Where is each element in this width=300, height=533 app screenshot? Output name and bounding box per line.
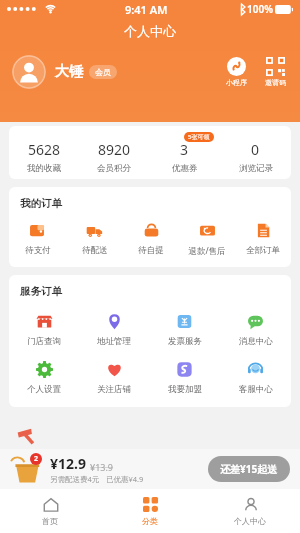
button[interactable]: Cart [10, 452, 44, 486]
staticText: 待配送 [82, 245, 108, 256]
staticText: 待支付 [25, 245, 51, 256]
staticText: 9:41 AM [125, 2, 168, 17]
other: Mini program [227, 57, 246, 76]
button[interactable]: 3 [149, 131, 220, 174]
staticText: 退款/售后 [188, 245, 226, 257]
staticText: 已优惠¥4.9 [106, 474, 144, 484]
other: Invite QR code [266, 57, 285, 76]
staticText: 个人中心 [234, 516, 266, 526]
staticText: 地址管理 [97, 336, 131, 347]
staticText: 0 [251, 140, 260, 159]
button[interactable]: 8920 [79, 131, 149, 174]
staticText: 8920 [98, 140, 131, 159]
staticText: 我的订单 [20, 197, 62, 210]
staticText: 首页 [42, 516, 58, 526]
staticText: 我的收藏 [27, 163, 61, 174]
button[interactable]: 关注店铺 [79, 360, 149, 395]
button[interactable]: 会员 [95, 67, 111, 77]
staticText: 发票服务 [168, 336, 202, 347]
staticText: 关注店铺 [97, 384, 131, 395]
staticText: 门店查询 [27, 336, 61, 347]
button[interactable]: 个人中心 [200, 489, 300, 533]
staticText: 我要加盟 [168, 384, 202, 395]
button[interactable]: 5628 [9, 131, 79, 174]
staticText: 分类 [142, 516, 158, 526]
button[interactable]: 待支付 [9, 221, 66, 256]
button[interactable]: 地址管理 [79, 312, 149, 347]
button[interactable]: 分类 [100, 489, 200, 533]
staticText: 个人中心 [124, 23, 176, 39]
button[interactable]: 待配送 [66, 221, 123, 256]
staticText: 另需配送费4元 [50, 474, 100, 484]
button[interactable]: 个人设置 [9, 360, 79, 395]
staticText: 5628 [28, 140, 61, 159]
button[interactable]: 还差¥15起送 [208, 456, 290, 482]
button[interactable]: 我要加盟 [149, 360, 220, 395]
staticText: 小程序 [226, 78, 247, 87]
staticText: ¥12.9 [50, 454, 86, 473]
staticText: 客服中心 [239, 384, 273, 395]
button[interactable]: Invite QR code [263, 57, 288, 87]
staticText: 全部订单 [246, 245, 280, 256]
button[interactable]: Mini program [224, 57, 249, 87]
button[interactable]: 客服中心 [220, 360, 291, 395]
staticText: 5张可领 [188, 133, 210, 141]
button[interactable]: 0 [220, 131, 291, 174]
button[interactable]: 消息中心 [220, 312, 291, 347]
staticText: 消息中心 [239, 336, 273, 347]
staticText: 个人设置 [27, 384, 61, 395]
button[interactable]: 门店查询 [9, 312, 79, 347]
button[interactable]: 待自提 [123, 221, 179, 256]
staticText: 邀请码 [265, 78, 286, 87]
staticText: 大锤 [55, 63, 83, 81]
staticText: 服务订单 [20, 285, 62, 298]
staticText: 会员 [95, 67, 111, 77]
button[interactable]: 全部订单 [235, 221, 291, 256]
button[interactable]: 首页 [0, 489, 100, 533]
staticText: 待自提 [138, 245, 164, 256]
button[interactable]: Avatar [12, 55, 46, 89]
button[interactable]: 退款/售后 [179, 221, 235, 257]
staticText: 还差¥15起送 [220, 462, 278, 476]
staticText: 优惠券 [172, 163, 198, 174]
staticText: 2 [34, 454, 39, 464]
staticText: 3 [180, 140, 189, 159]
staticText: 会员积分 [97, 163, 131, 174]
staticText: 100% [247, 2, 273, 16]
button[interactable]: 发票服务 [149, 312, 220, 347]
staticText: ¥13.9 [90, 461, 114, 473]
staticText: 浏览记录 [239, 163, 273, 174]
